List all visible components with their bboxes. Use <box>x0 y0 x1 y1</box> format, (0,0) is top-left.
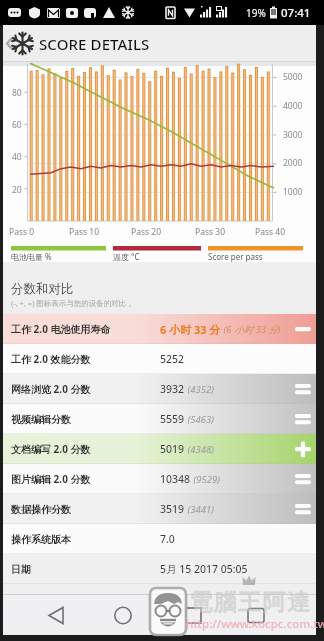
staticText: 数据操作分数 <box>11 503 71 516</box>
staticText: 视频编辑分数 <box>11 413 71 426</box>
staticText: 电池电量 % <box>11 251 52 262</box>
staticText: 1000 <box>283 186 303 198</box>
staticText: Score per pass <box>208 251 263 262</box>
staticText: 20 <box>12 184 22 196</box>
staticText: 10348 <box>160 472 191 486</box>
staticText: 5000 <box>283 71 303 83</box>
button[interactable]: 操作系统版本 <box>3 524 316 554</box>
staticText: 2000 <box>283 157 303 169</box>
staticText: 7.0 <box>160 532 175 546</box>
staticText: 5252 <box>160 352 185 366</box>
staticText: Pass 10 <box>69 226 99 238</box>
button[interactable]: 工作 2.0 电池使用寿命 <box>3 314 316 344</box>
staticText: 日期 <box>11 563 31 576</box>
staticText: Pass 20 <box>131 226 161 238</box>
staticText: 19% <box>246 6 266 20</box>
staticText: (6 小时 33 分) <box>221 323 281 336</box>
button[interactable]: 网络浏览 2.0 分数 <box>3 374 316 404</box>
staticText: 3932 <box>160 382 185 396</box>
staticText: 60 <box>12 119 22 131</box>
staticText: (9529) <box>191 473 220 486</box>
staticText: 分数和对比 <box>11 281 74 297</box>
staticText: http://www.kocpc.com.tw <box>186 616 324 632</box>
staticText: (4352) <box>185 383 214 396</box>
staticText: 3519 <box>160 502 185 516</box>
button[interactable]: 视频编辑分数 <box>3 404 316 434</box>
staticText: 07:41 <box>281 5 311 21</box>
staticText: 40 <box>12 151 22 163</box>
staticText: 5月 15 2017 05:05 <box>160 562 248 576</box>
staticText: (3441) <box>185 503 214 516</box>
button[interactable] <box>212 594 316 635</box>
staticText: (5463) <box>185 413 214 426</box>
staticText: 3000 <box>283 129 303 141</box>
button[interactable]: 文档编写 2.0 分数 <box>3 434 316 464</box>
staticText: Pass 30 <box>195 226 225 238</box>
staticText: Pass 40 <box>255 226 285 238</box>
staticText: (4348) <box>185 443 214 456</box>
staticText: 文档编写 2.0 分数 <box>11 442 91 456</box>
staticText: 网络浏览 2.0 分数 <box>11 382 91 396</box>
staticText: 温度 °C <box>113 251 140 262</box>
staticText: 電腦王阿達 <box>189 588 312 617</box>
button[interactable] <box>3 594 108 635</box>
button[interactable]: SCORE DETAILS <box>3 25 316 62</box>
button[interactable]: 日期 <box>3 554 316 584</box>
staticText: 工作 2.0 电池使用寿命 <box>11 322 111 336</box>
staticText: 图片编辑 2.0 分数 <box>11 472 91 486</box>
staticText: 80 <box>12 87 22 99</box>
staticText: SCORE DETAILS <box>39 34 150 54</box>
staticText: 工作 2.0 效能分数 <box>11 352 91 366</box>
button[interactable] <box>108 594 212 635</box>
staticText: 4000 <box>283 100 303 112</box>
button[interactable]: 图片编辑 2.0 分数 <box>3 464 316 494</box>
staticText: (-, +, =) 图标表示与您的设备的对比 。 <box>11 298 136 308</box>
button[interactable]: 数据操作分数 <box>3 494 316 524</box>
staticText: 5559 <box>160 412 185 426</box>
staticText: 5019 <box>160 442 185 456</box>
staticText: Pass 0 <box>9 226 35 238</box>
staticText: 6 小时 33 分 <box>160 322 221 337</box>
button[interactable]: 工作 2.0 效能分数 <box>3 344 316 374</box>
staticText: 操作系统版本 <box>11 533 71 546</box>
